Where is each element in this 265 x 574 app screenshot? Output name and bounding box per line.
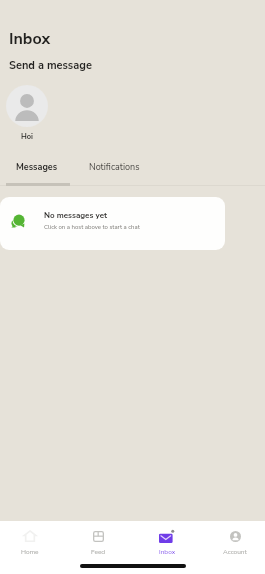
button[interactable]: Hoi	[6, 85, 48, 127]
staticText: Home	[21, 547, 39, 556]
staticText: Feed	[91, 547, 106, 556]
button[interactable]: Notifications	[69, 156, 159, 178]
button[interactable]: Inbox	[146, 529, 188, 556]
other: Inbox	[159, 529, 175, 543]
staticText: Send a message	[9, 58, 92, 73]
staticText: Click on a host above to start a chat	[44, 223, 140, 231]
staticText: Notifications	[89, 161, 140, 173]
button[interactable]: Messages	[5, 156, 69, 178]
staticText: Inbox	[159, 547, 176, 556]
other: Account	[230, 531, 241, 542]
button[interactable]: Account	[214, 529, 256, 556]
other: Home	[24, 530, 36, 542]
button[interactable]: Home	[9, 529, 51, 556]
staticText: Hoi	[21, 131, 34, 141]
button[interactable]: Feed	[77, 529, 119, 556]
other: Feed	[93, 531, 104, 542]
staticText: No messages yet	[44, 210, 108, 221]
button[interactable]: No messages yet	[0, 197, 225, 250]
staticText: Inbox	[9, 28, 51, 50]
staticText: Messages	[16, 161, 58, 173]
staticText: Account	[223, 547, 247, 556]
